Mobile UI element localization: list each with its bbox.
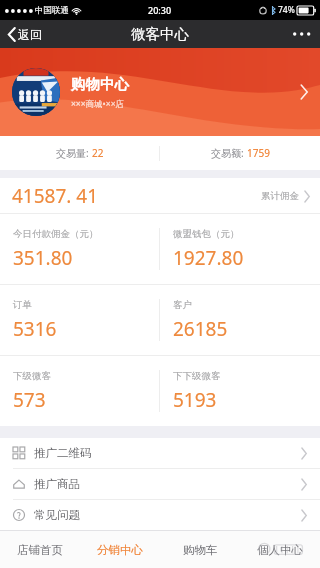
staticText: 74% (278, 4, 295, 16)
staticText: 下级微客 (13, 370, 51, 382)
staticText: 订单 (13, 299, 32, 311)
staticText: 573 (13, 387, 46, 413)
staticText: 中国联通 (35, 5, 69, 16)
button[interactable]: 返回 (0, 23, 50, 46)
button[interactable]: 下级微客 (0, 356, 159, 426)
staticText: 微盟钱包（元） (173, 228, 240, 240)
staticText: ×××商城•××店 (71, 98, 125, 110)
button[interactable]: 41587. 41 (0, 178, 320, 213)
button[interactable]: 推广商品 (0, 469, 320, 499)
staticText: 5193 (173, 387, 217, 413)
staticText: 41587. 41 (12, 183, 99, 209)
staticText: 1927.80 (173, 245, 244, 271)
button[interactable]: 微盟钱包（元） (160, 214, 320, 284)
staticText: 客户 (173, 299, 192, 311)
staticText: 推广商品 (34, 477, 80, 491)
staticText: 20:30 (148, 4, 172, 16)
button[interactable]: 店铺首页 (0, 531, 80, 568)
staticText: 微客中心 (131, 25, 189, 43)
staticText: 今日付款佣金（元） (13, 228, 99, 240)
button[interactable]: 下下级微客 (160, 356, 320, 426)
button[interactable]: 個人中心 (240, 531, 320, 568)
button[interactable]: 订单 (0, 285, 159, 355)
button[interactable]: 常见问题 (0, 500, 320, 530)
button[interactable]: 今日付款佣金（元） (0, 214, 159, 284)
staticText: 351.80 (13, 245, 73, 271)
button[interactable]: 推广二维码 (0, 438, 320, 468)
button[interactable]: 购物中心 (0, 48, 320, 136)
staticText: 下下级微客 (173, 370, 221, 382)
staticText: 推广二维码 (34, 446, 92, 460)
staticText: 26185 (173, 316, 228, 342)
button[interactable]: More options (283, 24, 320, 44)
staticText: 22 (92, 146, 104, 160)
staticText: 個人中心 (257, 543, 303, 557)
button[interactable]: 购物车 (160, 531, 240, 568)
button[interactable]: 客户 (160, 285, 320, 355)
staticText: 1759 (247, 146, 270, 160)
staticText: 累计佣金 (261, 190, 299, 202)
staticText: 分销中心 (97, 543, 143, 557)
staticText: 返回 (18, 27, 42, 42)
staticText: 5316 (13, 316, 57, 342)
staticText: 店铺首页 (17, 543, 63, 557)
button[interactable]: 分销中心 (80, 531, 160, 568)
staticText: 常见问题 (34, 508, 80, 522)
staticText: 购物中心 (71, 75, 129, 93)
staticText: 交易额: (211, 146, 247, 160)
staticText: 交易量: (56, 146, 92, 160)
staticText: 购物车 (183, 543, 218, 557)
